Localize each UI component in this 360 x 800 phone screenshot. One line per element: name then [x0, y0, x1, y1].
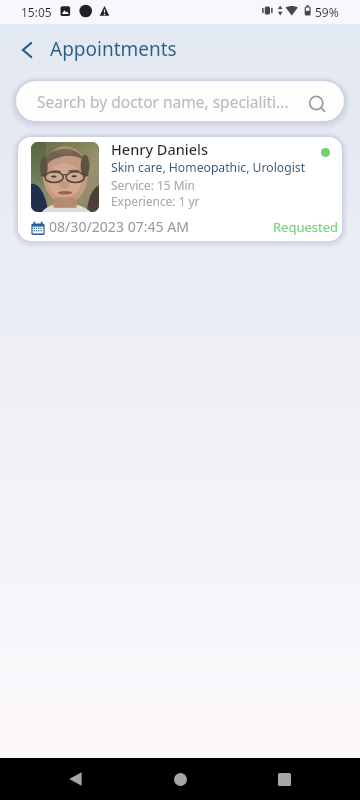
staticText: 59%: [315, 4, 339, 20]
staticText: Experience: 1 yr: [111, 193, 200, 209]
staticText: Henry Daniels: [111, 139, 209, 159]
staticText: Appointments: [50, 36, 177, 62]
button[interactable]: Recent apps: [262, 758, 306, 800]
button[interactable]: Back: [12, 35, 42, 65]
button[interactable]: Home: [158, 758, 202, 800]
button[interactable]: Henry Daniels: [18, 137, 342, 241]
button[interactable]: Search by doctor name, specialiti...: [16, 81, 344, 121]
button[interactable]: Back: [53, 758, 97, 800]
staticText: Search by doctor name, specialiti...: [37, 91, 289, 112]
staticText: 08/30/2023 07:45 AM: [49, 217, 190, 236]
staticText: Skin care, Homeopathic, Urologist: [111, 159, 306, 176]
staticText: Service: 15 Min: [111, 177, 195, 193]
staticText: Requested: [273, 218, 339, 236]
staticText: 15:05: [21, 4, 52, 20]
